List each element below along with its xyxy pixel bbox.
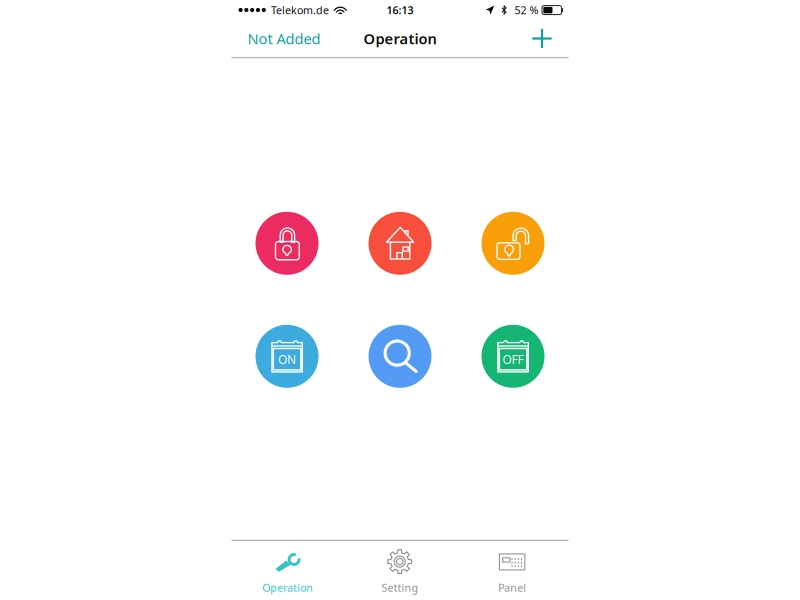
staticText: ON [278,351,296,367]
button[interactable]: Lock [255,212,318,275]
staticText: Panel [498,580,526,595]
button[interactable]: Panel [456,541,568,600]
button[interactable]: Add [526,23,557,54]
button[interactable]: Unlock [481,212,544,275]
button[interactable]: Schedule off [481,325,544,388]
button[interactable]: Schedule on [255,325,318,388]
staticText: 52 % [514,3,538,17]
staticText: Setting [381,580,418,595]
staticText: OFF [502,351,523,367]
staticText: Operation [363,29,436,48]
button[interactable]: Not Added [245,23,322,54]
button[interactable]: Setting [344,541,456,600]
button[interactable]: Search [368,325,431,388]
staticText: Operation [262,580,313,595]
button[interactable]: Home [368,212,431,275]
staticText: 16:13 [386,3,413,17]
staticText: Telekom.de [271,3,329,17]
button[interactable]: Operation [231,541,344,600]
staticText: Not Added [247,29,320,48]
